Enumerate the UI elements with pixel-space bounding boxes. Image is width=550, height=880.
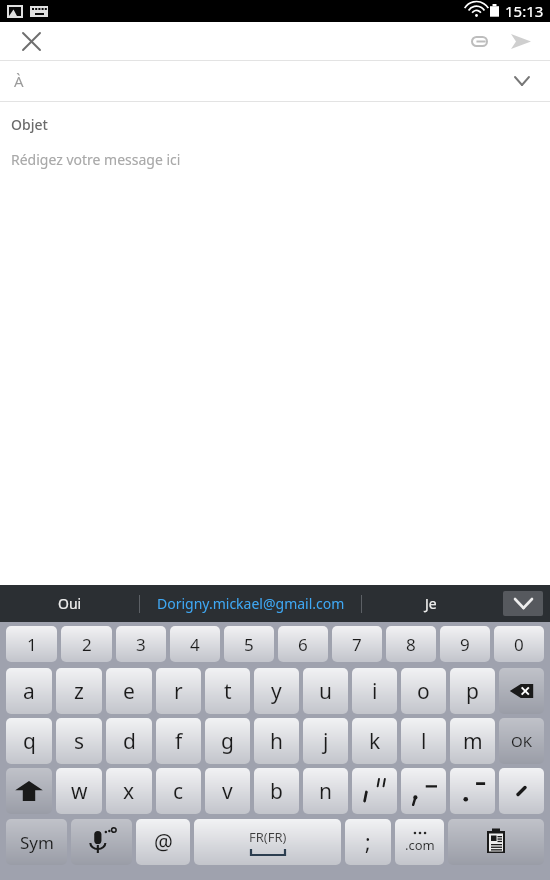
staticText: .com	[405, 836, 435, 854]
button[interactable]: v	[205, 768, 250, 814]
button[interactable]: À	[0, 61, 550, 101]
button[interactable]: Close	[14, 24, 48, 58]
staticText: f	[175, 727, 183, 756]
button[interactable]: Apostrophe and quote	[352, 768, 397, 814]
staticText: Sym	[20, 831, 54, 854]
staticText: b	[270, 777, 283, 806]
staticText: t	[224, 677, 232, 706]
button[interactable]: Attach file	[462, 24, 496, 58]
button[interactable]: w	[56, 768, 102, 814]
button[interactable]: d	[106, 718, 152, 764]
button[interactable]: Comma and dash	[401, 768, 446, 814]
button[interactable]: 9	[440, 626, 490, 662]
staticText: k	[369, 727, 381, 756]
staticText: v	[222, 777, 233, 806]
staticText: i	[372, 677, 378, 706]
button[interactable]: Objet	[0, 115, 550, 134]
staticText: q	[23, 727, 36, 756]
staticText: 15:13	[505, 1, 544, 21]
button[interactable]: Dorigny.mickael@gmail.com	[140, 585, 361, 622]
button[interactable]: j	[303, 718, 348, 764]
staticText: 3	[136, 633, 146, 656]
button[interactable]: Voice input	[71, 819, 132, 865]
button[interactable]: a	[6, 668, 52, 714]
staticText: 1	[27, 633, 37, 656]
staticText: z	[74, 677, 84, 706]
button[interactable]: Accent	[499, 768, 544, 814]
staticText: g	[221, 727, 234, 756]
button[interactable]: ;	[345, 819, 391, 865]
button[interactable]: Expand recipient fields	[506, 65, 538, 97]
staticText: 8	[406, 633, 416, 656]
button[interactable]: Oui	[0, 585, 139, 622]
staticText: c	[173, 777, 184, 806]
button[interactable]: g	[205, 718, 250, 764]
staticText: a	[23, 677, 35, 706]
button[interactable]: r	[156, 668, 201, 714]
button[interactable]: Hide keyboard suggestions	[503, 591, 543, 616]
button[interactable]: l	[401, 718, 446, 764]
staticText: Je	[425, 594, 437, 613]
button[interactable]: 7	[332, 626, 382, 662]
button[interactable]: 8	[386, 626, 436, 662]
staticText: 9	[460, 633, 470, 656]
staticText: Dorigny.mickael@gmail.com	[157, 594, 345, 613]
staticText: o	[417, 677, 430, 706]
staticText: x	[123, 777, 135, 806]
button[interactable]: b	[254, 768, 299, 814]
button[interactable]: k	[352, 718, 397, 764]
button[interactable]: 2	[61, 626, 112, 662]
staticText: À	[14, 71, 24, 91]
button[interactable]: e	[106, 668, 152, 714]
button[interactable]: Dot com	[395, 819, 444, 865]
staticText: p	[466, 677, 479, 706]
staticText: l	[421, 727, 427, 756]
staticText: d	[123, 727, 136, 756]
button[interactable]: i	[352, 668, 397, 714]
staticText: w	[71, 777, 88, 806]
button[interactable]: h	[254, 718, 299, 764]
button[interactable]: Sym	[6, 819, 67, 865]
button[interactable]: Backspace	[499, 668, 544, 714]
button[interactable]: c	[156, 768, 201, 814]
staticText: 2	[82, 633, 92, 656]
button[interactable]: Shift	[6, 768, 52, 814]
staticText: ;	[365, 828, 371, 857]
staticText: y	[271, 677, 282, 706]
button[interactable]: Clipboard	[448, 819, 544, 865]
button[interactable]: 5	[224, 626, 274, 662]
staticText: n	[319, 777, 332, 806]
staticText: 7	[352, 633, 362, 656]
staticText: m	[463, 727, 483, 756]
button[interactable]: Rédigez votre message ici	[0, 150, 550, 585]
staticText: r	[174, 677, 183, 706]
button[interactable]: OK	[499, 718, 544, 764]
staticText: 4	[190, 633, 200, 656]
button[interactable]: f	[156, 718, 201, 764]
button[interactable]: p	[450, 668, 495, 714]
button[interactable]: @	[136, 819, 190, 865]
button[interactable]: 3	[116, 626, 166, 662]
button[interactable]: Space	[194, 819, 341, 865]
button[interactable]: Period and dash	[450, 768, 495, 814]
button[interactable]: s	[56, 718, 102, 764]
staticText: e	[123, 677, 135, 706]
button[interactable]: m	[450, 718, 495, 764]
button[interactable]: o	[401, 668, 446, 714]
button[interactable]: Je	[362, 585, 500, 622]
button[interactable]: t	[205, 668, 250, 714]
button[interactable]: u	[303, 668, 348, 714]
button[interactable]: q	[6, 718, 52, 764]
button[interactable]: n	[303, 768, 348, 814]
button[interactable]: 1	[6, 626, 57, 662]
button[interactable]: 0	[494, 626, 544, 662]
button[interactable]: z	[56, 668, 102, 714]
button[interactable]: Send	[504, 24, 538, 58]
button[interactable]: 6	[278, 626, 328, 662]
staticText: h	[270, 727, 283, 756]
button[interactable]: y	[254, 668, 299, 714]
staticText: Oui	[58, 594, 82, 613]
button[interactable]: 4	[170, 626, 220, 662]
button[interactable]: x	[106, 768, 152, 814]
staticText: j	[323, 727, 329, 756]
